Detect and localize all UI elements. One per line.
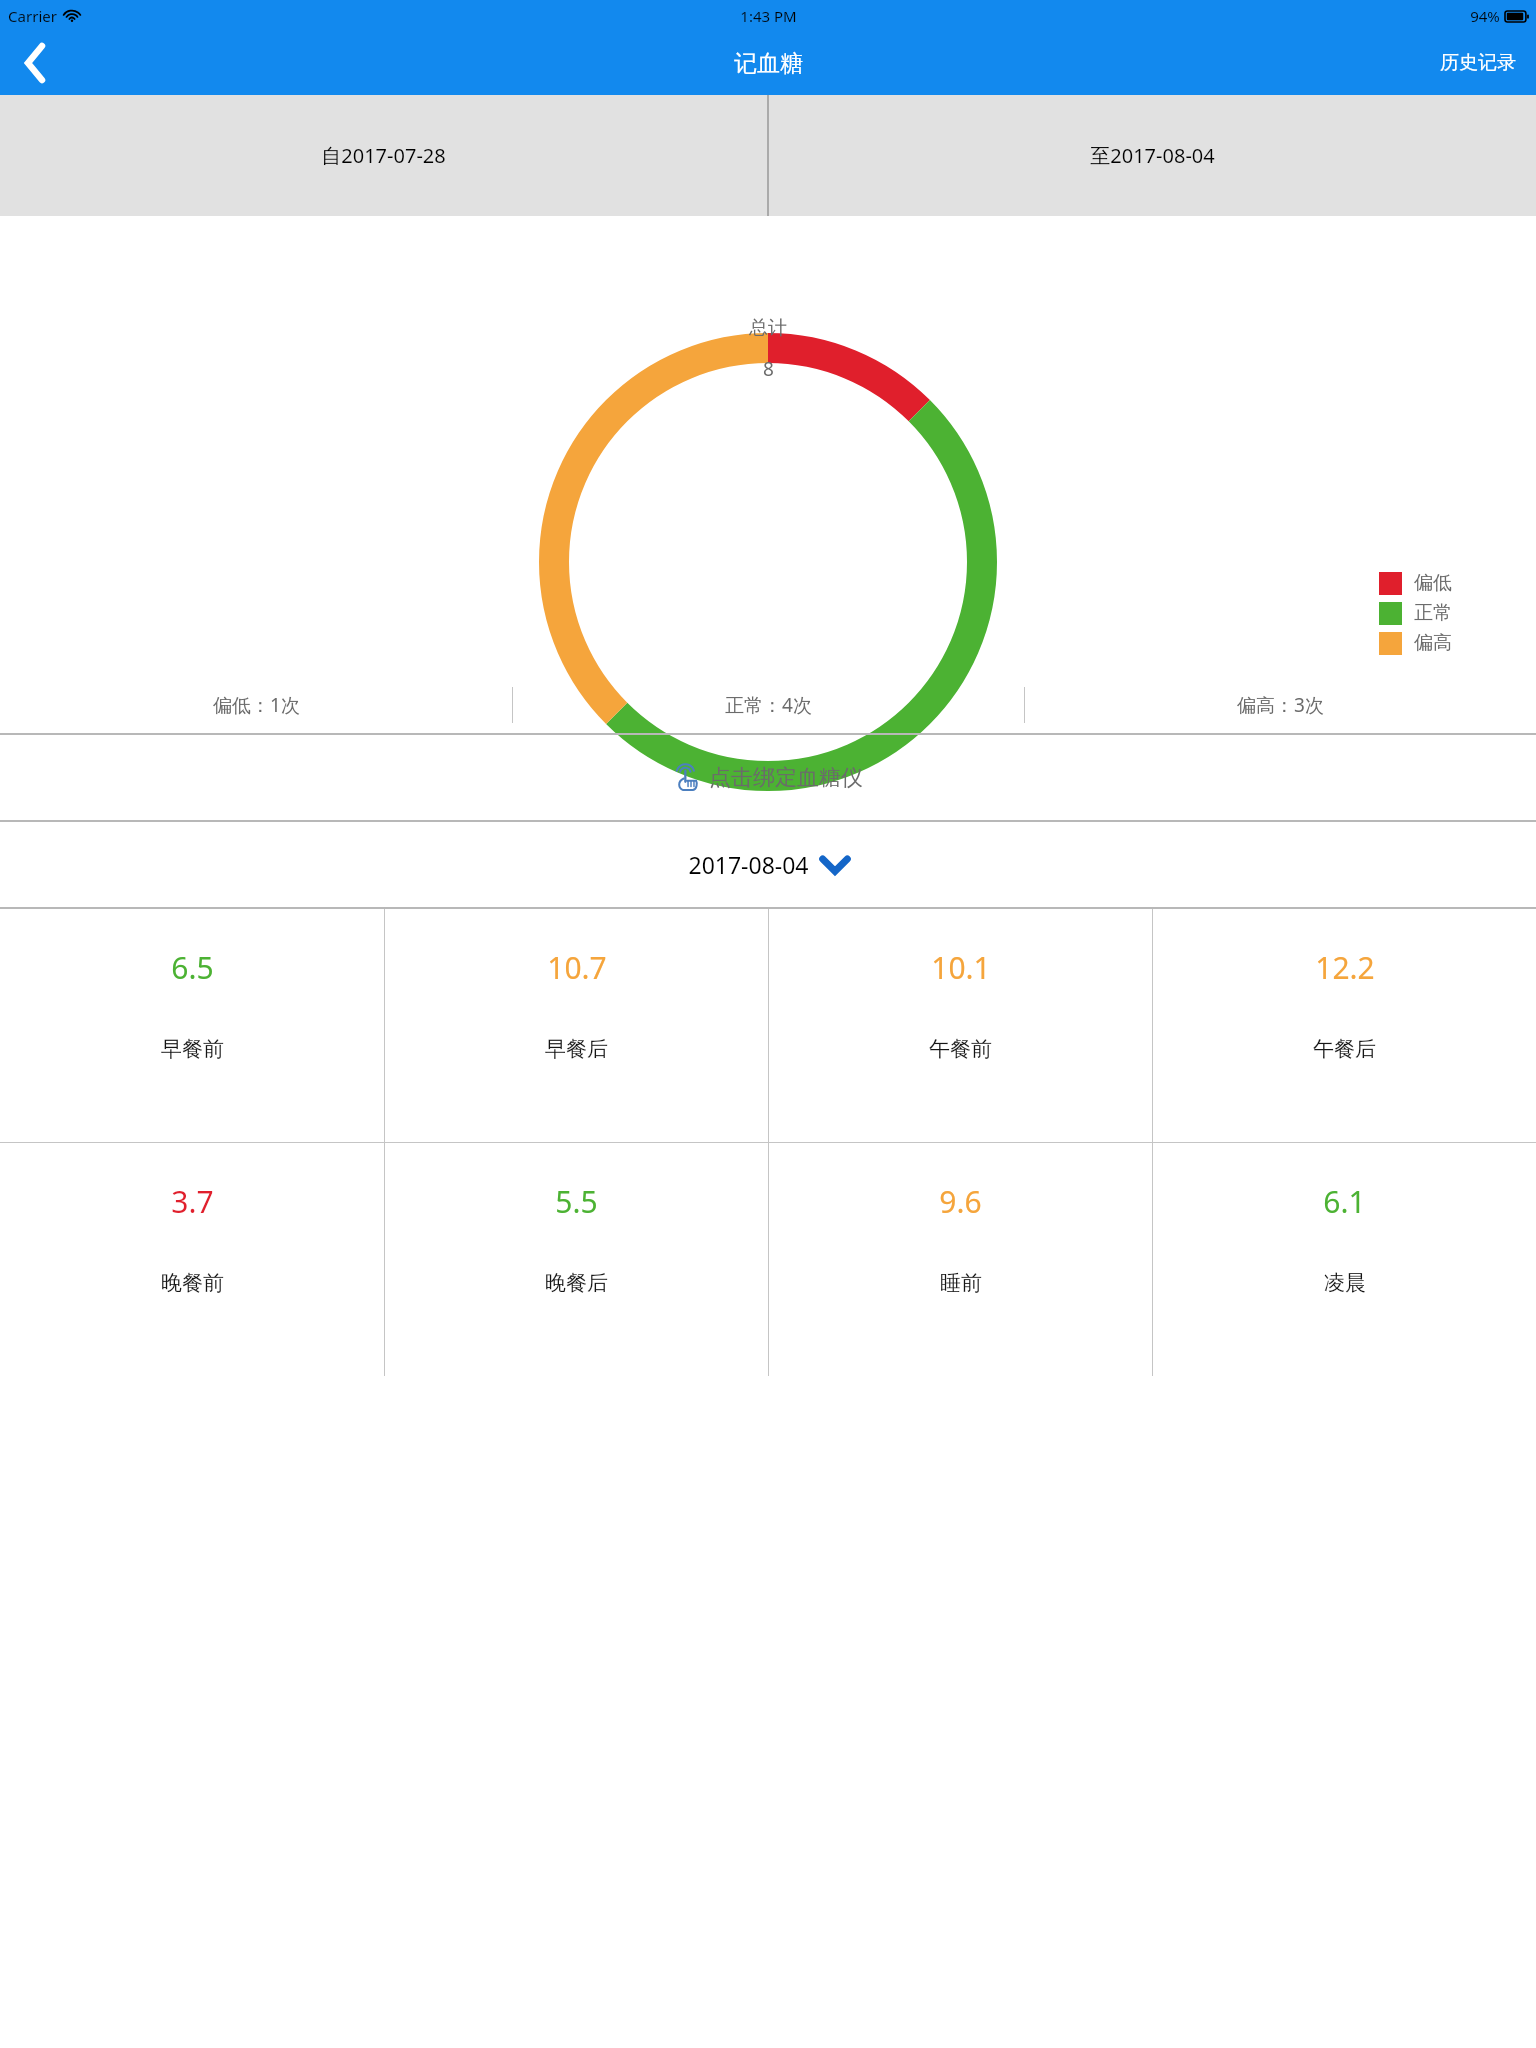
staticText: 正常：4次 <box>725 692 812 718</box>
button[interactable]: 9.6 <box>769 1143 1152 1376</box>
staticText: 5.5 <box>555 1181 598 1222</box>
button[interactable]: 2017-08-04 <box>0 822 1536 907</box>
staticText: 自2017-07-28 <box>321 142 446 169</box>
staticText: 至2017-08-04 <box>1090 142 1215 169</box>
button[interactable]: 自2017-07-28 <box>0 95 767 216</box>
staticText: Carrier <box>8 6 57 26</box>
staticText: 12.2 <box>1315 947 1375 988</box>
staticText: 记血糖 <box>734 49 803 78</box>
staticText: 点击绑定血糖仪 <box>709 764 863 792</box>
staticText: 正常 <box>1414 601 1452 625</box>
button[interactable]: 3.7 <box>0 1143 384 1376</box>
button[interactable]: 至2017-08-04 <box>769 95 1536 216</box>
staticText: 晚餐前 <box>161 1270 224 1296</box>
staticText: 94% <box>1470 6 1500 26</box>
staticText: 偏低 <box>1414 571 1452 595</box>
staticText: 睡前 <box>940 1270 982 1296</box>
button[interactable]: 点击绑定血糖仪 <box>0 735 1536 820</box>
staticText: 10.1 <box>931 947 991 988</box>
staticText: 10.7 <box>547 947 607 988</box>
button[interactable]: 6.1 <box>1153 1143 1536 1376</box>
staticText: 3.7 <box>171 1181 214 1222</box>
staticText: 2017-08-04 <box>688 849 809 880</box>
button[interactable]: 10.7 <box>385 909 768 1142</box>
button[interactable]: 12.2 <box>1153 909 1536 1142</box>
staticText: 午餐前 <box>929 1036 992 1062</box>
button[interactable]: 历史记录 <box>1420 31 1536 95</box>
staticText: 6.5 <box>171 947 214 988</box>
button[interactable]: 6.5 <box>0 909 384 1142</box>
staticText: 午餐后 <box>1313 1036 1376 1062</box>
staticText: 8 <box>763 356 774 382</box>
staticText: 6.1 <box>1323 1181 1366 1222</box>
staticText: 历史记录 <box>1440 51 1516 75</box>
button[interactable]: 5.5 <box>385 1143 768 1376</box>
staticText: 偏低：1次 <box>213 692 300 718</box>
button[interactable]: 10.1 <box>769 909 1152 1142</box>
staticText: 凌晨 <box>1324 1270 1366 1296</box>
staticText: 总计 <box>749 316 787 340</box>
staticText: 早餐前 <box>161 1036 224 1062</box>
staticText: 早餐后 <box>545 1036 608 1062</box>
staticText: 偏高 <box>1414 631 1452 655</box>
staticText: 9.6 <box>939 1181 982 1222</box>
staticText: 1:43 PM <box>740 6 797 26</box>
button[interactable]: Back <box>0 31 72 95</box>
staticText: 偏高：3次 <box>1237 692 1324 718</box>
staticText: 晚餐后 <box>545 1270 608 1296</box>
